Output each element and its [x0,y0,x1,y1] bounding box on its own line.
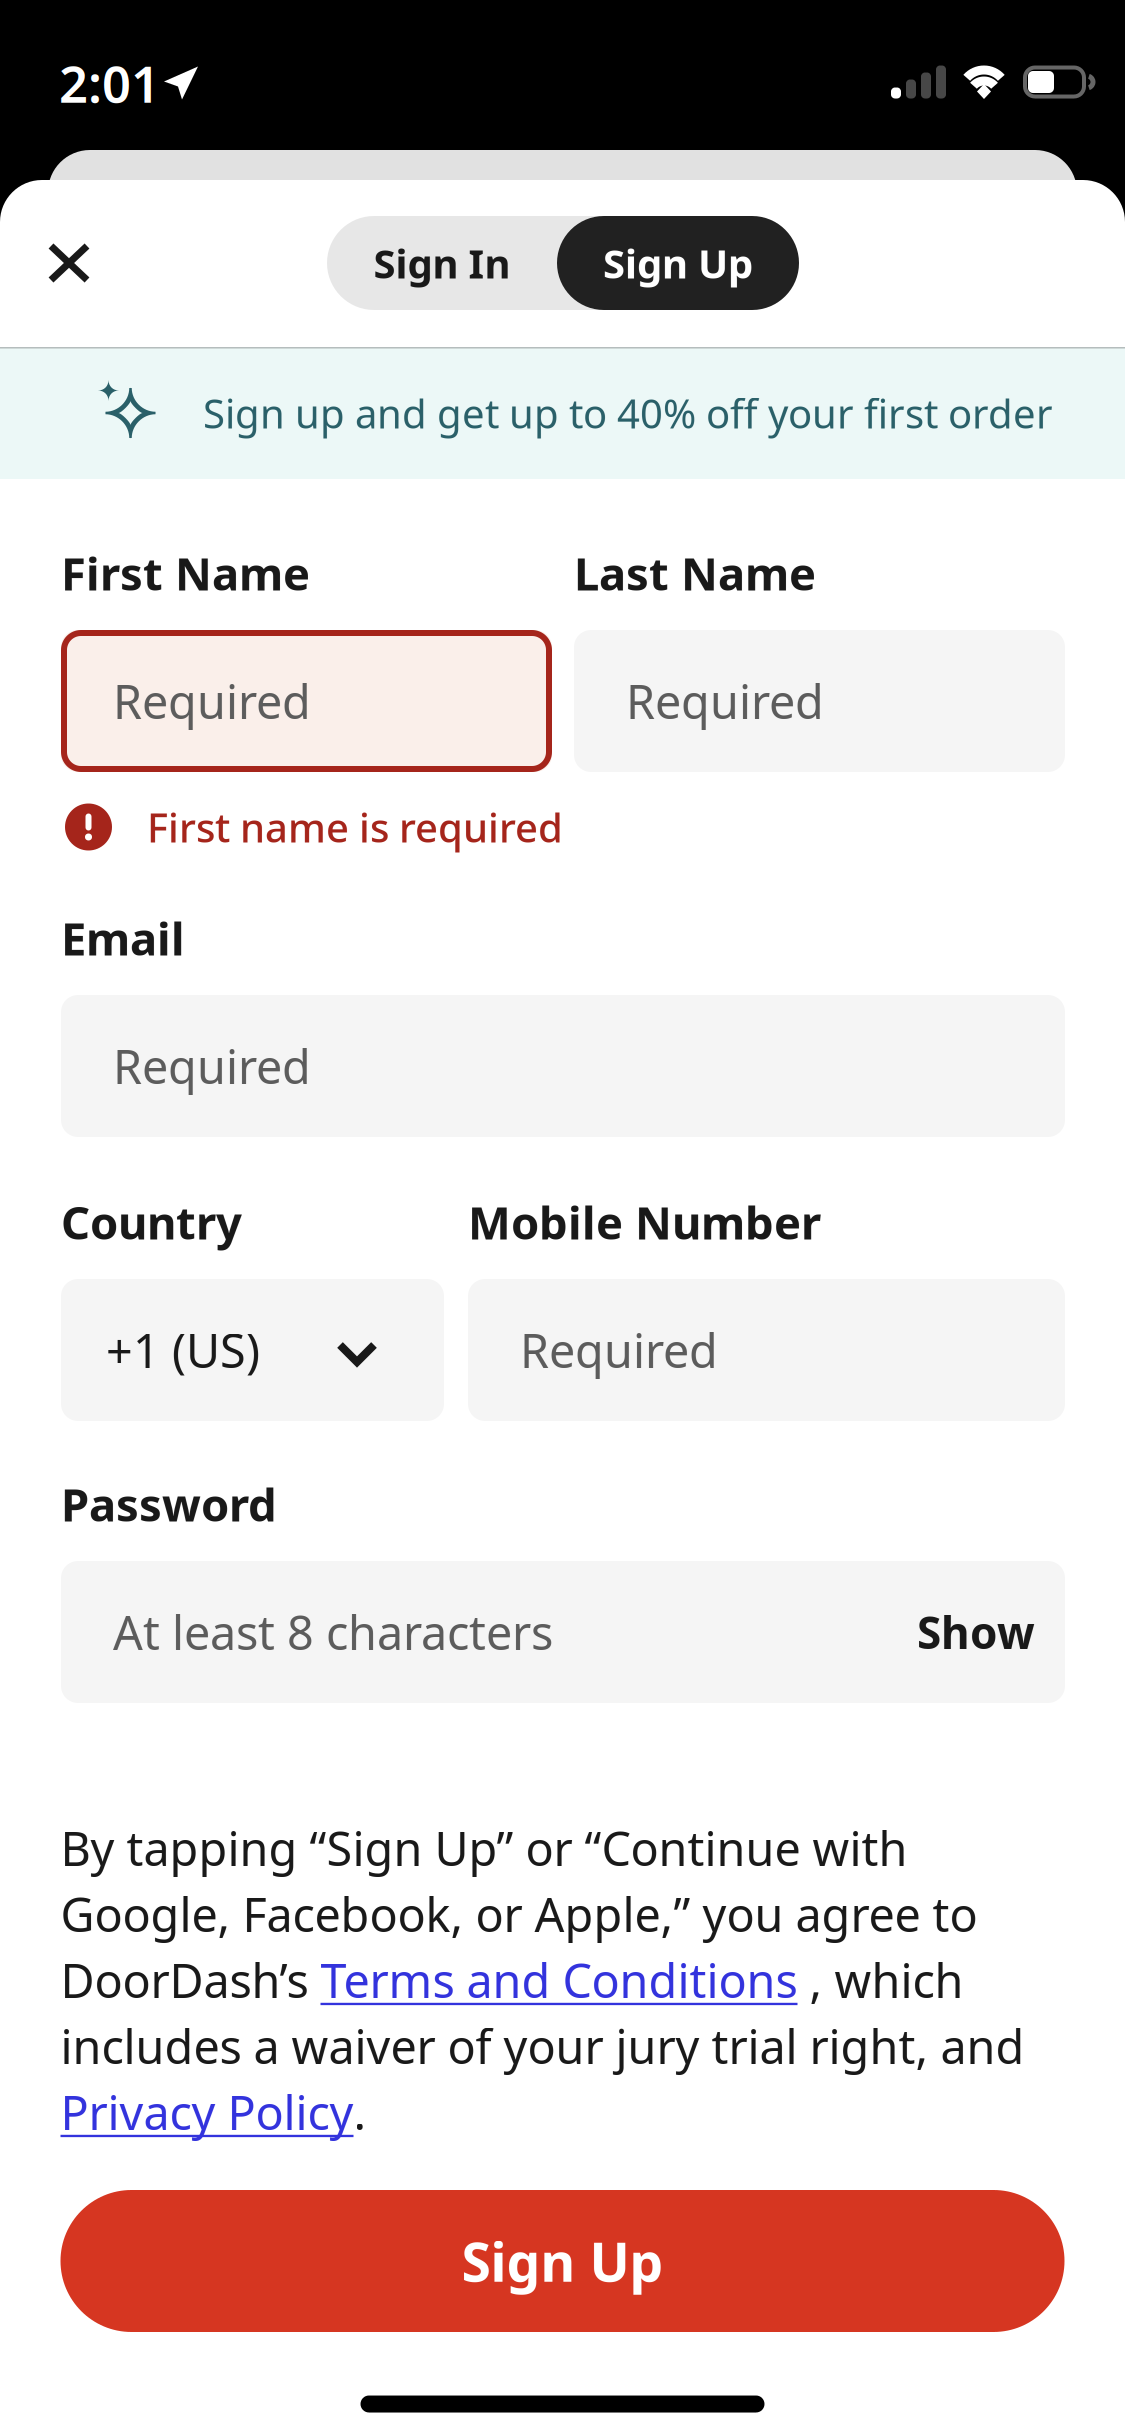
staticText: Google, Facebook, or Apple,” you agree t… [60,1883,977,1945]
staticText: Sign Up [603,236,753,289]
staticText: +1 (US) [106,1319,260,1381]
staticText: Required [113,1035,311,1097]
button[interactable]: Required [61,995,1065,1137]
button[interactable]: At least 8 characters [61,1561,1065,1703]
button[interactable]: Privacy Policy [60,2081,353,2143]
button[interactable]: +1 (US) [61,1279,444,1421]
staticText: Show [917,1603,1035,1661]
button[interactable]: Terms and Conditions [320,1949,797,2011]
staticText: 2:01 [59,49,160,117]
staticText: DoorDash’s [60,1949,320,2011]
staticText: Email [61,908,185,968]
staticText: Country [61,1192,242,1252]
staticText: By tapping “Sign Up” or “Continue with [60,1817,907,1879]
staticText: Password [61,1474,277,1534]
staticText: includes a waiver of your jury trial rig… [60,2015,1024,2077]
button[interactable]: Required [61,630,552,772]
staticText: Sign In [373,236,510,289]
staticText: First Name [61,543,310,603]
staticText: , which [797,1949,963,2011]
staticText: Privacy Policy [60,2081,353,2143]
staticText: Last Name [574,543,816,603]
button[interactable]: Close [13,207,125,319]
staticText: Terms and Conditions [320,1949,797,2011]
button[interactable]: Required [574,630,1065,772]
staticText: Sign Up [461,2226,663,2296]
button[interactable]: Show [875,1561,1065,1703]
button[interactable]: Sign Up [557,216,799,310]
staticText: . [353,2081,366,2143]
button[interactable]: Sign In [327,216,557,310]
staticText: Required [626,670,824,732]
button[interactable]: Sign Up [60,2190,1064,2332]
staticText: At least 8 characters [113,1601,553,1663]
staticText: Required [113,670,311,732]
staticText: Mobile Number [468,1192,821,1252]
staticText: Required [520,1319,718,1381]
staticText: Sign up and get up to 40% off your first… [203,386,1053,439]
button[interactable]: Required [468,1279,1065,1421]
staticText: First name is required [147,800,563,853]
